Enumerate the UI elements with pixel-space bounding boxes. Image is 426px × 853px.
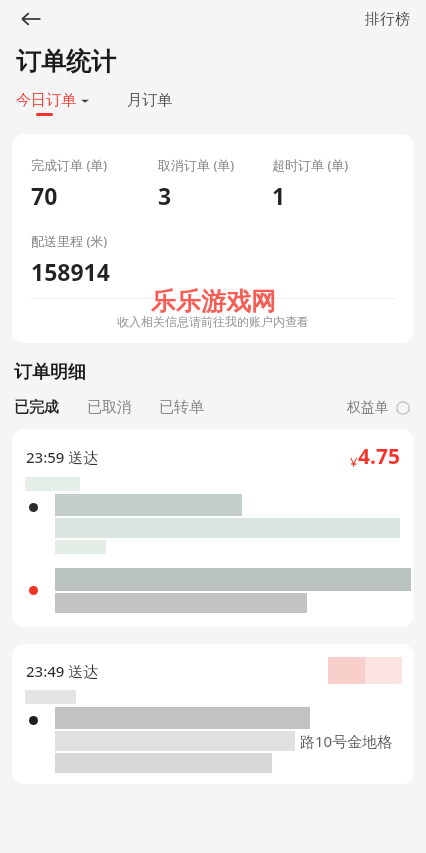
button[interactable]: 已取消: [87, 398, 132, 417]
staticText: 完成订单 (单): [31, 156, 108, 174]
staticText: 23:49 送达: [26, 661, 99, 681]
button[interactable]: Back: [12, 0, 50, 38]
staticText: 配送里程 (米): [31, 232, 108, 250]
button[interactable]: 排行榜: [355, 4, 420, 35]
staticText: ¥: [350, 453, 358, 471]
button[interactable]: 月订单: [127, 91, 172, 110]
button[interactable]: 收入相关信息请前往我的账户内查看: [12, 299, 414, 343]
button[interactable]: 今日订单: [16, 91, 89, 116]
staticText: 已转单: [159, 398, 204, 417]
staticText: 超时订单 (单): [272, 156, 349, 174]
staticText: 排行榜: [365, 10, 410, 29]
staticText: 70: [31, 180, 58, 211]
staticText: 订单统计: [16, 46, 116, 77]
staticText: 3: [158, 180, 172, 211]
staticText: 4.75: [358, 442, 400, 471]
button[interactable]: 已转单: [159, 398, 204, 417]
staticText: 乐乐游戏网: [151, 286, 276, 317]
button[interactable]: 23:49 送达: [12, 644, 414, 784]
staticText: 今日订单: [16, 91, 76, 110]
staticText: 158914: [31, 256, 110, 287]
staticText: 收入相关信息请前往我的账户内查看: [117, 314, 309, 329]
staticText: 已完成: [14, 398, 59, 417]
button[interactable]: 23:59 送达: [12, 429, 414, 627]
staticText: 路10号金地格: [300, 731, 393, 751]
staticText: 取消订单 (单): [158, 156, 235, 174]
staticText: 已取消: [87, 398, 132, 417]
button[interactable]: 权益单: [347, 399, 410, 417]
staticText: 1: [272, 180, 286, 211]
staticText: 权益单: [347, 399, 389, 417]
staticText: 月订单: [127, 91, 172, 110]
button[interactable]: 已完成: [14, 398, 59, 417]
staticText: 订单明细: [14, 361, 86, 384]
staticText: 23:59 送达: [26, 447, 99, 467]
